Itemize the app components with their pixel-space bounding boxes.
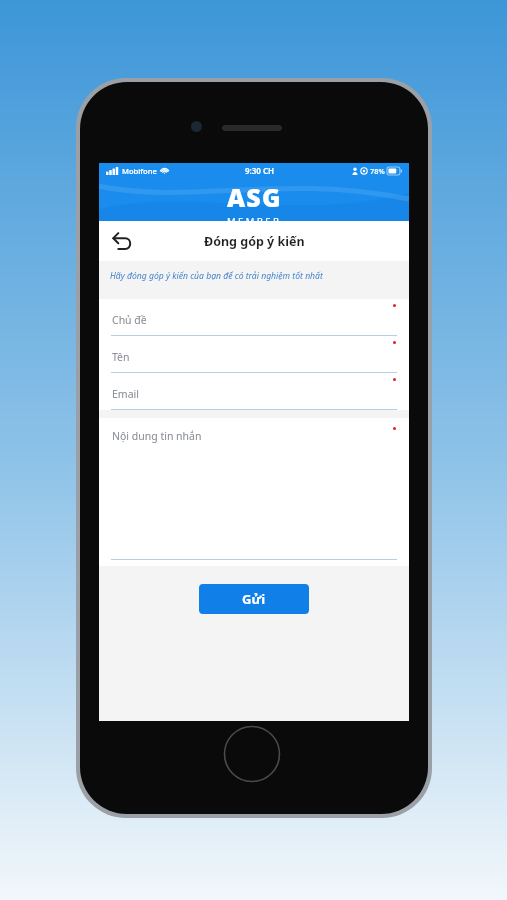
button[interactable]: Back: [105, 224, 139, 258]
staticText: 78%: [370, 166, 385, 176]
staticText: ASG: [227, 180, 282, 214]
button[interactable]: Tên: [99, 336, 409, 373]
staticText: Email: [112, 387, 139, 401]
button[interactable]: Email: [99, 373, 409, 410]
staticText: Chủ đề: [112, 313, 147, 327]
staticText: Gửi: [242, 590, 266, 608]
staticText: MEMBER: [227, 215, 282, 221]
staticText: Mobifone: [122, 166, 157, 176]
staticText: Đóng góp ý kiến: [204, 233, 305, 250]
staticText: Tên: [112, 350, 130, 364]
staticText: Hãy đóng góp ý kiến của bạn để có trải n…: [110, 270, 323, 282]
staticText: Nội dung tin nhắn: [112, 429, 202, 443]
button[interactable]: Gửi: [199, 584, 309, 614]
staticText: 9:30 CH: [245, 165, 275, 176]
button[interactable]: Nội dung tin nhắn: [99, 418, 409, 566]
button[interactable]: Chủ đề: [99, 299, 409, 336]
